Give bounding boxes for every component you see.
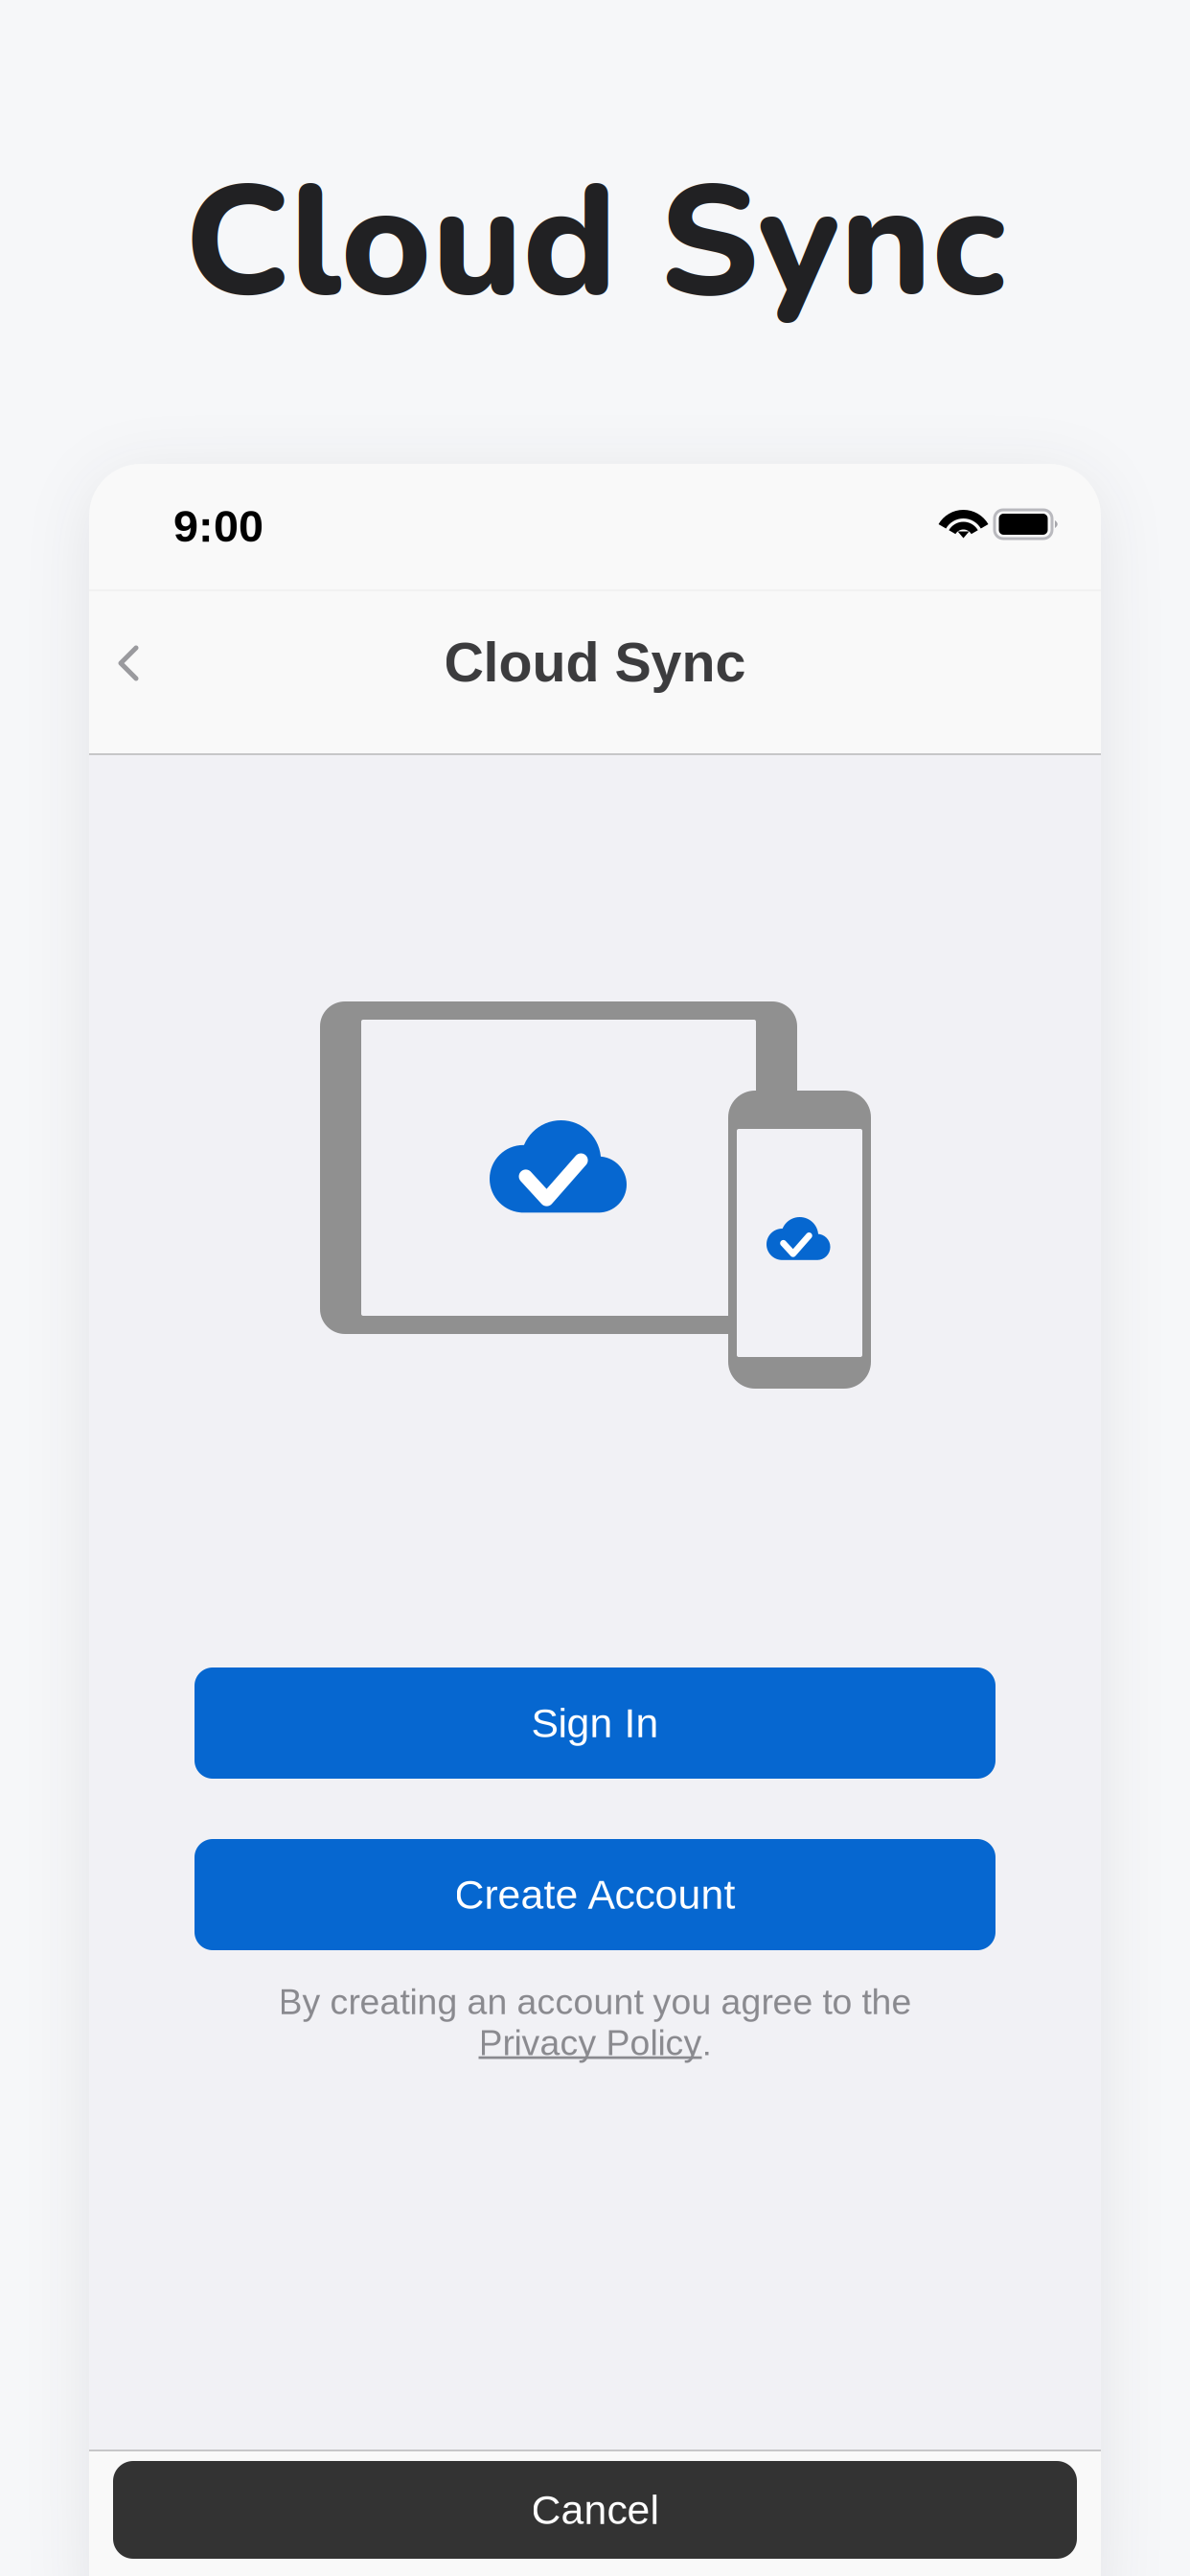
- staticText: Privacy Policy: [479, 2023, 702, 2063]
- staticText: 9:00: [173, 501, 263, 551]
- button[interactable]: Create Account: [195, 1839, 995, 1950]
- staticText: Cancel: [531, 2487, 659, 2533]
- staticText: Cloud Sync: [184, 137, 1006, 348]
- staticText: By creating an account you agree to the: [278, 1982, 912, 2022]
- staticText: .: [702, 2023, 711, 2063]
- staticText: Cloud Sync: [444, 632, 746, 693]
- staticText: Sign In: [531, 1700, 659, 1746]
- button[interactable]: Privacy Policy: [479, 2023, 702, 2063]
- button[interactable]: Back: [82, 617, 174, 709]
- button[interactable]: Cancel: [113, 2461, 1077, 2559]
- staticText: Create Account: [455, 1872, 735, 1918]
- button[interactable]: Sign In: [195, 1667, 995, 1779]
